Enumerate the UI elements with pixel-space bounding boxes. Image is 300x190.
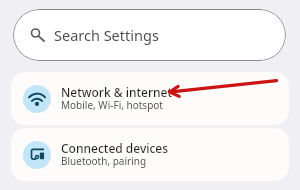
staticText: Connected devices: [61, 140, 169, 156]
staticText: Search Settings: [54, 25, 159, 45]
staticText: Mobile, Wi-Fi, hotspot: [61, 98, 163, 112]
staticText: Network & internet: [61, 84, 173, 100]
button[interactable]: Network and internet: [11, 72, 289, 125]
staticText: Bluetooth, pairing: [61, 154, 147, 168]
button[interactable]: Connected devices: [11, 128, 289, 181]
button[interactable]: Search Settings: [13, 9, 286, 61]
